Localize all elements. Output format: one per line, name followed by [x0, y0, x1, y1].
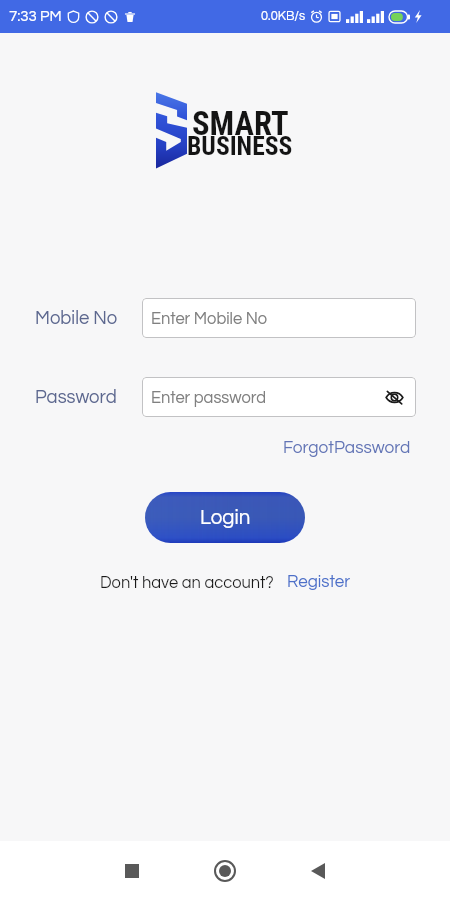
staticText: Enter password — [151, 389, 267, 406]
staticText: Login — [200, 507, 251, 528]
staticText: Register — [287, 573, 351, 591]
staticText: Enter Mobile No — [151, 310, 268, 327]
staticText: Don't have an account? — [100, 574, 274, 591]
button[interactable]: Home — [202, 848, 248, 894]
staticText: 0.0KB/s — [261, 10, 306, 23]
staticText: BUSINESS — [187, 131, 293, 161]
button[interactable]: Back — [295, 848, 341, 894]
button[interactable]: Recent apps — [109, 848, 155, 894]
staticText: 7:33 PM — [9, 9, 62, 24]
button[interactable]: Show password — [381, 384, 407, 410]
button[interactable]: Register — [287, 573, 351, 591]
staticText: Password — [35, 388, 117, 407]
button[interactable]: ForgotPassword — [281, 436, 413, 460]
staticText: ForgotPassword — [283, 439, 411, 457]
button[interactable]: Login — [145, 492, 305, 543]
button[interactable]: Enter Mobile No — [142, 298, 416, 338]
button[interactable]: Enter password — [142, 377, 416, 417]
staticText: Mobile No — [35, 309, 118, 328]
staticText: SMART — [192, 105, 289, 143]
